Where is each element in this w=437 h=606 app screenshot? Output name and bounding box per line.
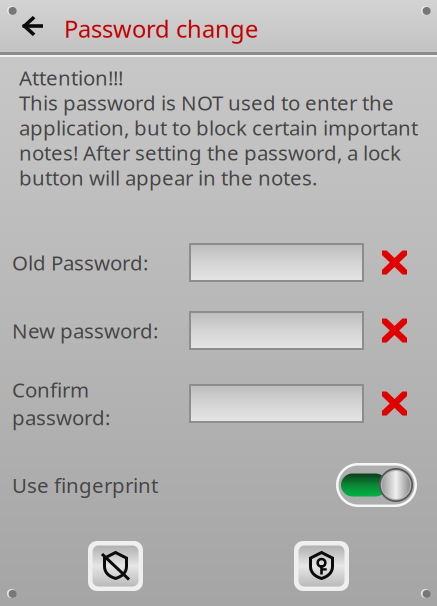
button[interactable]: Save password [294, 541, 349, 591]
staticText: Use fingerprint [12, 471, 158, 499]
button[interactable]: Clear Confirm password: [382, 391, 407, 415]
button[interactable]: Clear New password: [382, 318, 407, 342]
staticText: Password change [64, 12, 258, 45]
staticText: Attention!!! This password is NOT used t… [19, 65, 418, 190]
button[interactable]: Disable password protection [88, 541, 143, 591]
button[interactable]: Back [0, 0, 52, 52]
button[interactable]: Clear Old Password: [382, 250, 407, 274]
staticText: New password: [12, 317, 158, 344]
button[interactable]: Use fingerprint [336, 463, 417, 507]
staticText: Old Password: [12, 249, 148, 276]
staticText: Confirm password: [12, 376, 110, 431]
